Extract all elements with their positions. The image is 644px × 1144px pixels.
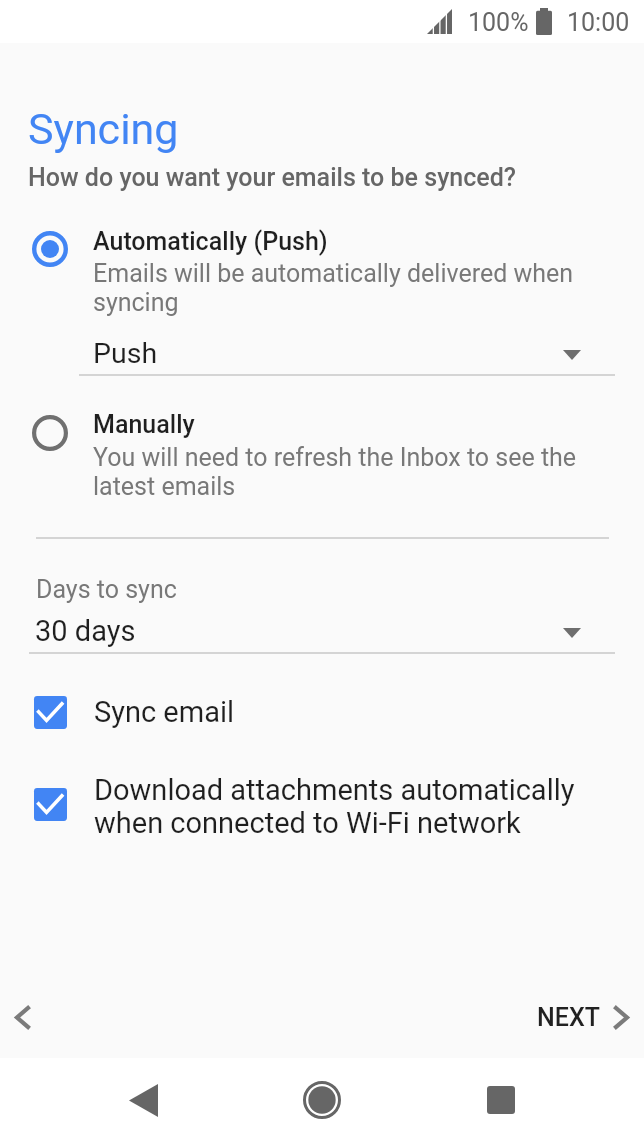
staticText: Emails will be automatically delivered w… <box>93 259 584 317</box>
button[interactable]: Automatically (Push) <box>0 215 644 320</box>
staticText: 30 days <box>35 614 136 648</box>
button[interactable]: Recent apps <box>471 1070 531 1130</box>
staticText: NEXT <box>537 1003 600 1032</box>
staticText: Manually <box>93 410 195 439</box>
button[interactable]: Previous <box>0 993 46 1041</box>
button[interactable]: Sync email <box>0 682 644 742</box>
staticText: Syncing <box>28 104 179 154</box>
button[interactable]: NEXT <box>537 1006 644 1035</box>
staticText: How do you want your emails to be synced… <box>28 163 517 192</box>
staticText: Sync email <box>94 695 235 729</box>
staticText: Download attachments automatically when … <box>94 773 604 840</box>
button[interactable]: Home <box>292 1070 352 1130</box>
button[interactable]: Back <box>113 1070 173 1130</box>
button[interactable]: 30 days <box>29 608 615 654</box>
button[interactable]: Download attachments automatically when … <box>0 770 644 863</box>
staticText: Days to sync <box>36 575 177 604</box>
button[interactable]: Push <box>79 330 615 376</box>
button[interactable]: Manually <box>0 398 644 504</box>
staticText: Push <box>93 337 158 370</box>
staticText: 10:00 <box>567 8 630 37</box>
staticText: Automatically (Push) <box>93 227 328 256</box>
staticText: You will need to refresh the Inbox to se… <box>93 443 584 501</box>
staticText: 100% <box>468 8 529 37</box>
